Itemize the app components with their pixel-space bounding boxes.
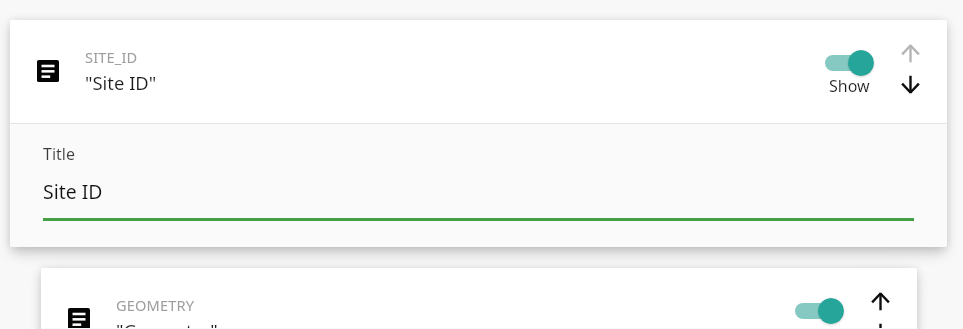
staticText: Site ID	[43, 178, 103, 204]
staticText: Show	[799, 323, 840, 328]
staticText: "Geometry"	[116, 318, 218, 328]
button[interactable]: SITE_ID	[10, 20, 947, 123]
staticText: "Site ID"	[85, 70, 157, 95]
button[interactable]: Move up	[901, 44, 920, 63]
button[interactable]: Move down	[871, 323, 890, 328]
staticText: SITE_ID	[85, 47, 138, 67]
button[interactable]: GEOMETRY	[41, 268, 917, 328]
button[interactable]: Toggle visibility	[820, 44, 880, 99]
button[interactable]: Title	[10, 124, 947, 247]
button[interactable]: Move up	[871, 292, 890, 311]
button[interactable]: Toggle visibility	[790, 292, 850, 328]
staticText: Title	[43, 143, 75, 165]
staticText: GEOMETRY	[116, 295, 195, 315]
staticText: Show	[829, 75, 870, 97]
button[interactable]: Move down	[901, 75, 920, 94]
